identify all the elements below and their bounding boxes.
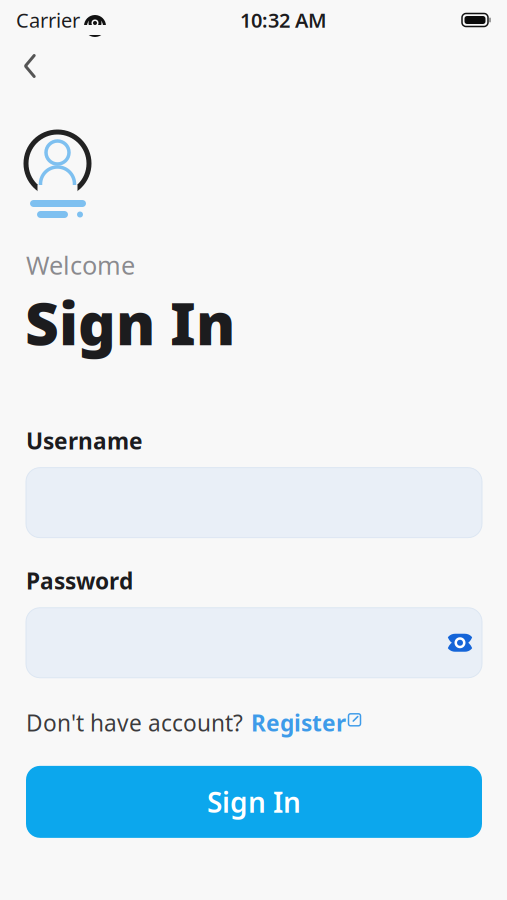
- button[interactable]: Back: [2, 42, 58, 90]
- staticText: Don't have account?: [26, 708, 243, 738]
- staticText: Password: [26, 566, 133, 596]
- staticText: Sign In: [207, 783, 301, 820]
- staticText: Username: [26, 425, 143, 456]
- button[interactable]: Sign In: [26, 766, 482, 838]
- staticText: 10:32 AM: [240, 7, 327, 33]
- staticText: Welcome: [26, 248, 135, 282]
- staticText: Sign In: [25, 284, 235, 361]
- button[interactable]: Show password: [438, 621, 482, 665]
- staticText: Carrier: [16, 7, 80, 33]
- button[interactable]: Register: [251, 708, 361, 738]
- staticText: Register: [251, 708, 346, 738]
